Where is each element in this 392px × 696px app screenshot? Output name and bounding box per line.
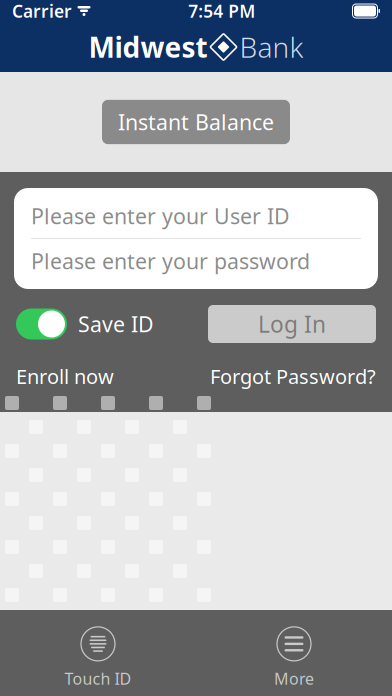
button[interactable]: Please enter your User ID bbox=[14, 194, 378, 238]
staticText: Save ID bbox=[78, 310, 154, 338]
staticText: Please enter your password bbox=[31, 247, 310, 275]
button[interactable]: Log In bbox=[208, 305, 376, 343]
button[interactable]: Touch ID bbox=[38, 627, 158, 689]
staticText: Please enter your User ID bbox=[31, 202, 290, 230]
button[interactable]: Enroll now bbox=[16, 357, 114, 396]
staticText: Enroll now bbox=[16, 363, 114, 390]
staticText: Instant Balance bbox=[118, 108, 274, 136]
staticText: Midwest bbox=[88, 28, 207, 66]
button[interactable]: Instant Balance bbox=[102, 100, 290, 144]
staticText: More bbox=[274, 668, 314, 689]
staticText: Forgot Password? bbox=[210, 363, 376, 390]
button[interactable]: More bbox=[234, 627, 354, 689]
button[interactable]: Please enter your password bbox=[14, 239, 378, 283]
staticText: Log In bbox=[258, 309, 326, 339]
button[interactable]: Save ID bbox=[16, 308, 154, 339]
staticText: 7:54 PM bbox=[188, 0, 255, 22]
staticText: Bank bbox=[239, 28, 303, 66]
staticText: Touch ID bbox=[64, 668, 131, 689]
staticText: Carrier bbox=[12, 0, 72, 22]
button[interactable]: Forgot Password? bbox=[210, 357, 376, 396]
